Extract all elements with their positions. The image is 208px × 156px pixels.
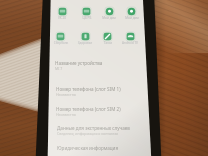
- staticText: MI 7: [55, 66, 63, 71]
- staticText: Неизвестно: [56, 112, 76, 117]
- button[interactable]: Данные для экстренных случаев: [57, 125, 145, 136]
- staticText: Данные для экстренных случаев: [57, 125, 130, 131]
- staticText: Неизвестно: [56, 92, 76, 97]
- button[interactable]: Такси: [102, 31, 113, 42]
- staticText: Номер телефона (слот SIM 1): [56, 86, 121, 92]
- button[interactable]: VK 20: [57, 6, 68, 17]
- button[interactable]: Название устройства: [55, 60, 143, 71]
- staticText: Название устройства: [55, 60, 103, 66]
- staticText: Android TV: [119, 41, 141, 45]
- button[interactable]: Номер телефона (слот SIM 1): [56, 86, 144, 97]
- staticText: Здоровье: [74, 41, 96, 45]
- staticText: Мой дом: [98, 16, 120, 20]
- staticText: Мой дом: [121, 16, 143, 20]
- button[interactable]: Сбербанк: [55, 31, 66, 42]
- button[interactable]: Мой дом: [104, 6, 115, 17]
- button[interactable]: Android TV: [125, 31, 136, 42]
- staticText: VK 20: [51, 16, 73, 20]
- button[interactable]: Мой дом: [126, 6, 137, 17]
- staticText: Юридическая информация: [57, 145, 119, 151]
- staticText: ЦБ РБ: [76, 16, 98, 20]
- staticText: Такси: [97, 41, 119, 45]
- button[interactable]: Здоровье: [80, 31, 91, 42]
- button[interactable]: Юридическая информация: [57, 145, 145, 151]
- button[interactable]: ЦБ РБ: [81, 6, 92, 17]
- staticText: Сведения, информация о контактах: [57, 131, 119, 136]
- staticText: Сбербанк: [50, 41, 72, 45]
- staticText: Номер телефона (слот SIM 2): [56, 106, 121, 112]
- button[interactable]: Номер телефона (слот SIM 2): [56, 106, 144, 117]
